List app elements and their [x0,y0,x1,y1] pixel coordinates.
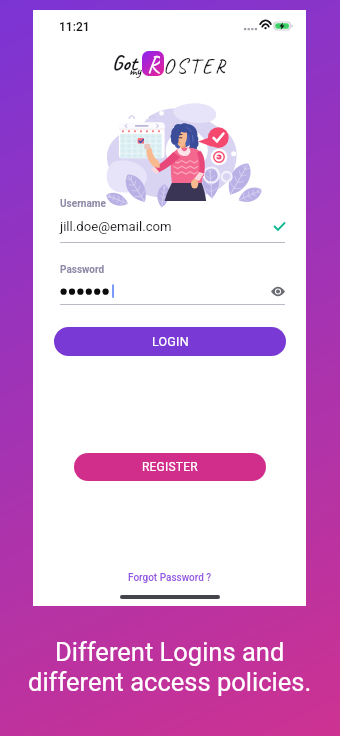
staticText: LOGIN [152,334,189,349]
staticText: Username [60,198,106,210]
button[interactable]: REGISTER [74,453,266,481]
staticText: jill.doe@email.com [60,219,172,234]
button[interactable]: Show password [271,287,285,296]
staticText: R [147,51,160,75]
staticText: OSTER [163,52,228,79]
button[interactable]: Forgot Password ? [122,569,218,587]
staticText: Different Logins and [55,637,285,667]
staticText: 11:21 [59,20,90,34]
button[interactable]: LOGIN [54,327,286,356]
staticText: different access policies. [28,667,312,697]
staticText: REGISTER [142,460,198,474]
staticText: my [129,63,141,79]
staticText: Got [112,50,137,76]
staticText: Password [60,264,105,276]
staticText: Forgot Password ? [128,572,212,584]
